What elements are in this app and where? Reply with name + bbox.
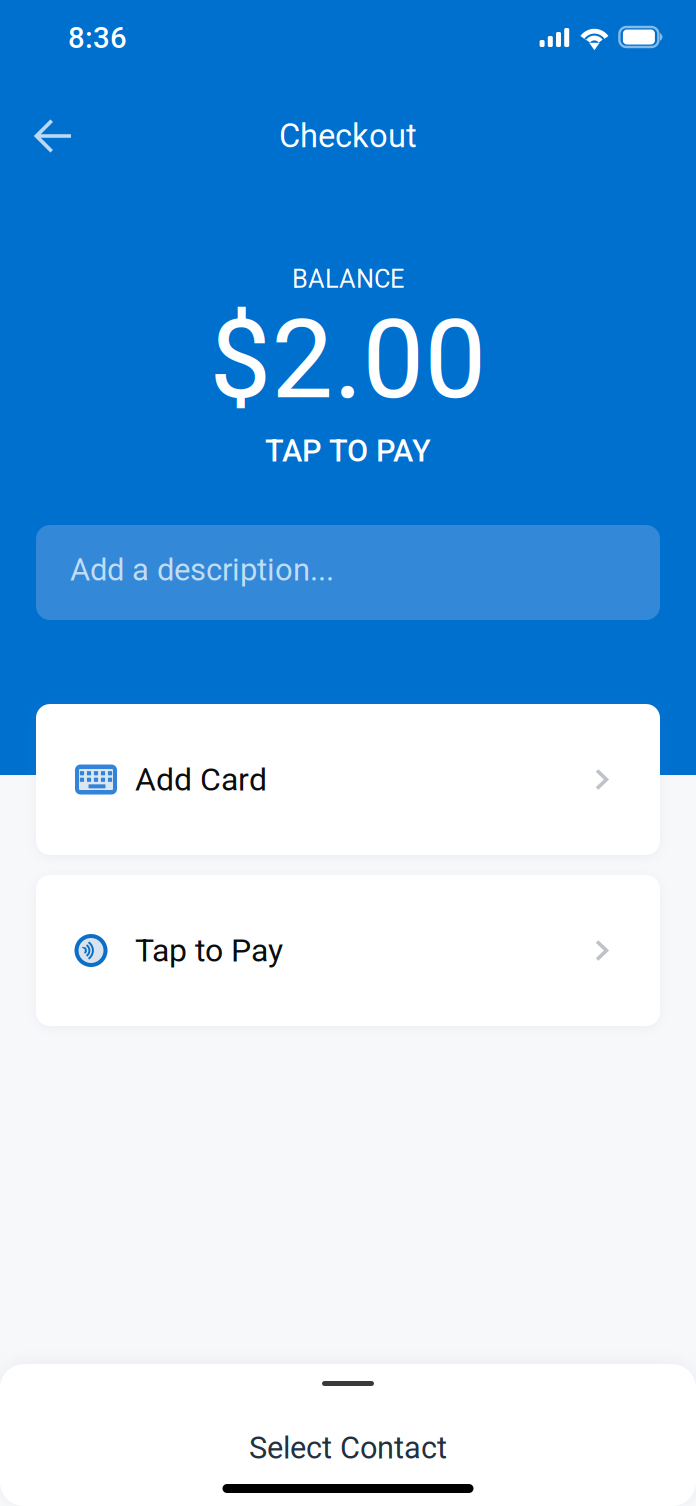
staticText: Checkout bbox=[279, 117, 417, 155]
button[interactable]: Back bbox=[8, 96, 98, 176]
button[interactable]: Select Contact bbox=[249, 1430, 447, 1466]
button[interactable]: Add Card bbox=[36, 704, 660, 855]
staticText: Add a description... bbox=[70, 552, 334, 588]
staticText: BALANCE bbox=[292, 264, 404, 294]
staticText: Tap to Pay bbox=[135, 932, 283, 969]
staticText: Select Contact bbox=[249, 1430, 447, 1466]
staticText: 8:36 bbox=[68, 21, 127, 55]
staticText: TAP TO PAY bbox=[265, 433, 431, 469]
button[interactable]: Tap to Pay bbox=[36, 875, 660, 1026]
staticText: Add Card bbox=[135, 761, 267, 798]
staticText: $2.00 bbox=[209, 296, 486, 424]
button[interactable]: Add a description... bbox=[36, 525, 660, 620]
